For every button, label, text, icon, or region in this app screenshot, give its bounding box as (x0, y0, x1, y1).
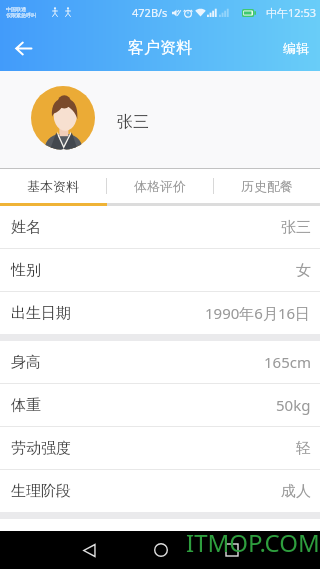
staticText: 编辑 (283, 40, 309, 56)
staticText: ITMOP.COM (186, 526, 320, 559)
button[interactable]: 体格评价 (106, 169, 213, 203)
button[interactable]: 生理阶段 (0, 470, 320, 512)
staticText: 1990年6月16日 (205, 303, 311, 323)
staticText: 50kg (276, 395, 311, 415)
button[interactable]: 身高 (0, 341, 320, 383)
button[interactable]: 劳动强度 (0, 427, 320, 469)
staticText: 仅限紧急呼叫 (6, 12, 36, 18)
staticText: 中国联通 (6, 6, 26, 12)
staticText: 历史配餐 (241, 178, 293, 194)
staticText: 165cm (264, 352, 311, 372)
staticText: 性别 (11, 261, 41, 280)
staticText: 出生日期 (11, 304, 71, 323)
staticText: 基本资料 (27, 178, 79, 194)
staticText: 客户资料 (128, 38, 192, 58)
staticText: 身高 (11, 353, 41, 372)
button[interactable]: 历史配餐 (213, 169, 320, 203)
button[interactable]: 出生日期 (0, 292, 320, 334)
staticText: 姓名 (11, 218, 41, 237)
staticText: 体重 (11, 396, 41, 415)
staticText: 472B/s (132, 5, 168, 20)
button[interactable]: Back (60, 531, 119, 569)
staticText: 生理阶段 (11, 482, 71, 501)
staticText: 张三 (117, 112, 149, 132)
button[interactable]: 基本资料 (0, 169, 106, 203)
staticText: 女 (296, 261, 311, 280)
button[interactable]: 体重 (0, 384, 320, 426)
button[interactable]: 性别 (0, 249, 320, 291)
button[interactable]: Home (119, 531, 202, 569)
button[interactable]: 编辑 (272, 24, 320, 71)
staticText: 劳动强度 (11, 439, 71, 458)
staticText: 体格评价 (134, 178, 186, 194)
button[interactable]: 姓名 (0, 206, 320, 248)
staticText: 成人 (281, 482, 311, 501)
staticText: 轻 (296, 439, 311, 458)
button[interactable]: Back (0, 25, 46, 71)
button[interactable]: Recents (202, 531, 261, 569)
staticText: 中午12:53 (266, 5, 317, 20)
staticText: 张三 (281, 218, 311, 237)
